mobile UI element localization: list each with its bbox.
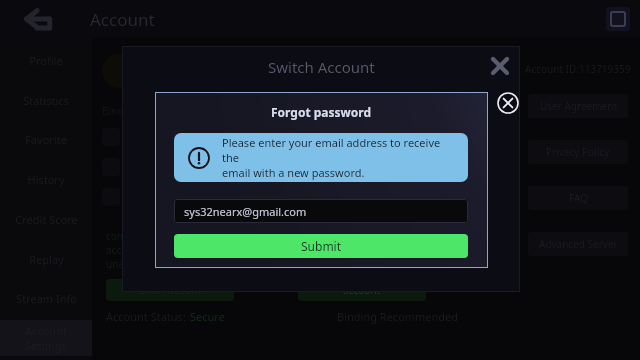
staticText: Statistics bbox=[23, 93, 69, 108]
button[interactable]: sys32nearx@gmail.com bbox=[174, 199, 468, 223]
staticText: Favorite bbox=[25, 132, 67, 147]
staticText: email with a new password. bbox=[222, 165, 365, 180]
staticText: Binding Recommended bbox=[337, 309, 459, 324]
staticText: unable to retrieve it! Please be careful… bbox=[106, 257, 286, 271]
staticText: account is not bound to any social platf… bbox=[106, 243, 359, 257]
staticText: Bind bbox=[102, 104, 124, 118]
staticText: Credit Score bbox=[15, 212, 78, 227]
button[interactable]: Stream bbox=[606, 7, 630, 31]
staticText: Account Status: bbox=[106, 309, 186, 324]
staticText: Advanced Server bbox=[539, 237, 618, 251]
staticText: Submit bbox=[301, 238, 342, 254]
staticText: account bbox=[343, 283, 381, 297]
staticText: Secure bbox=[190, 309, 225, 324]
button[interactable]: Close dialog bbox=[495, 90, 521, 116]
staticText: Account bbox=[90, 8, 155, 31]
staticText: Switch Account bbox=[268, 57, 375, 77]
staticText: Forgot password bbox=[271, 104, 372, 120]
button[interactable]: Bind Account bbox=[106, 279, 234, 301]
button[interactable]: Back bbox=[14, 4, 56, 34]
staticText: Privacy Policy bbox=[546, 145, 610, 159]
staticText: Account ID:113719359 bbox=[525, 62, 631, 76]
staticText: Please enter your email address to recei… bbox=[222, 135, 458, 165]
staticText: Replay bbox=[29, 252, 64, 267]
staticText: sys32nearx@gmail.com bbox=[184, 204, 307, 219]
staticText: continue your progress. Please note that… bbox=[106, 229, 367, 243]
staticText: FAQ bbox=[569, 191, 588, 205]
button[interactable]: Submit bbox=[174, 234, 468, 258]
staticText: History bbox=[27, 172, 65, 187]
button[interactable]: account bbox=[298, 279, 426, 301]
button[interactable]: Close bbox=[486, 52, 514, 80]
staticText: Profile bbox=[29, 53, 63, 68]
staticText: Bind Account bbox=[139, 283, 202, 297]
staticText: User Agreement bbox=[540, 99, 617, 113]
staticText: Stream Info bbox=[16, 291, 77, 306]
